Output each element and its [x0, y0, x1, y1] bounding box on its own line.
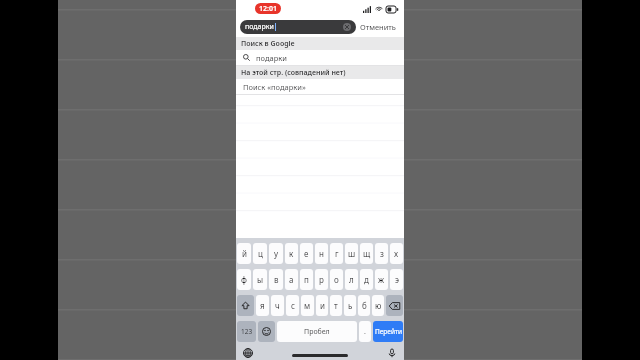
staticText: ф: [241, 274, 247, 285]
button[interactable]: подарки: [236, 50, 404, 65]
button[interactable]: Поиск «подарки»: [236, 79, 404, 94]
button[interactable]: Clear text: [343, 23, 351, 31]
button[interactable]: Пробел: [277, 321, 357, 342]
button[interactable]: й: [237, 243, 251, 264]
button[interactable]: .: [359, 321, 371, 342]
staticText: и: [320, 300, 325, 311]
staticText: Поиск в Google: [241, 39, 295, 49]
staticText: 12:01: [259, 4, 277, 14]
staticText: ш: [348, 248, 356, 259]
staticText: д: [364, 274, 369, 285]
staticText: з: [380, 248, 384, 259]
button[interactable]: 123: [237, 321, 256, 342]
staticText: На этой стр. (совпадений нет): [241, 68, 346, 78]
button[interactable]: р: [315, 269, 328, 290]
button[interactable]: ж: [375, 269, 388, 290]
staticText: ю: [375, 300, 382, 311]
staticText: т: [334, 300, 338, 311]
button[interactable]: о: [330, 269, 343, 290]
button[interactable]: в: [269, 269, 283, 290]
button[interactable]: ш: [345, 243, 358, 264]
button[interactable]: н: [315, 243, 328, 264]
staticText: с: [291, 300, 295, 311]
button[interactable]: ю: [372, 295, 384, 316]
button[interactable]: ь: [344, 295, 356, 316]
staticText: й: [242, 248, 247, 259]
button[interactable]: ц: [253, 243, 267, 264]
staticText: г: [335, 248, 339, 259]
button[interactable]: Перейти: [373, 321, 403, 342]
staticText: ж: [378, 274, 385, 285]
button[interactable]: Shift: [237, 295, 254, 316]
staticText: .: [364, 327, 366, 337]
button[interactable]: Change keyboard: [242, 347, 254, 359]
button[interactable]: э: [390, 269, 403, 290]
button[interactable]: г: [330, 243, 343, 264]
button[interactable]: я: [256, 295, 269, 316]
staticText: п: [304, 274, 309, 285]
button[interactable]: т: [330, 295, 342, 316]
staticText: я: [260, 300, 265, 311]
staticText: у: [274, 248, 279, 259]
button[interactable]: подарки: [240, 20, 356, 34]
staticText: а: [289, 274, 294, 285]
button[interactable]: Emoji: [258, 321, 275, 342]
button[interactable]: м: [301, 295, 314, 316]
staticText: ы: [257, 274, 264, 285]
button[interactable]: ы: [253, 269, 267, 290]
staticText: х: [394, 248, 399, 259]
button[interactable]: Backspace: [386, 295, 403, 316]
button[interactable]: и: [316, 295, 328, 316]
button[interactable]: а: [285, 269, 298, 290]
button[interactable]: щ: [360, 243, 373, 264]
staticText: Перейти: [375, 327, 402, 336]
button[interactable]: ч: [271, 295, 284, 316]
button[interactable]: л: [345, 269, 358, 290]
button[interactable]: д: [360, 269, 373, 290]
button[interactable]: с: [286, 295, 299, 316]
staticText: к: [289, 248, 294, 259]
staticText: ч: [275, 300, 280, 311]
staticText: л: [349, 274, 354, 285]
button[interactable]: б: [358, 295, 370, 316]
button[interactable]: к: [285, 243, 298, 264]
staticText: р: [319, 274, 324, 285]
staticText: м: [304, 300, 311, 311]
staticText: ц: [258, 248, 263, 259]
staticText: Пробел: [304, 327, 330, 337]
staticText: э: [395, 274, 399, 285]
staticText: щ: [363, 248, 371, 259]
button[interactable]: з: [375, 243, 388, 264]
button[interactable]: Отменить: [356, 20, 400, 34]
button[interactable]: Dictation: [386, 347, 398, 359]
button[interactable]: у: [269, 243, 283, 264]
staticText: подарки: [256, 53, 287, 63]
staticText: н: [319, 248, 324, 259]
staticText: б: [362, 300, 367, 311]
staticText: ь: [348, 300, 353, 311]
staticText: Отменить: [360, 22, 396, 32]
button[interactable]: х: [390, 243, 403, 264]
staticText: в: [274, 274, 279, 285]
button[interactable]: п: [300, 269, 313, 290]
button[interactable]: е: [300, 243, 313, 264]
staticText: о: [334, 274, 339, 285]
staticText: 123: [241, 327, 253, 336]
staticText: подарки: [245, 22, 274, 32]
staticText: е: [304, 248, 309, 259]
staticText: Поиск «подарки»: [243, 82, 306, 92]
button[interactable]: ф: [237, 269, 251, 290]
